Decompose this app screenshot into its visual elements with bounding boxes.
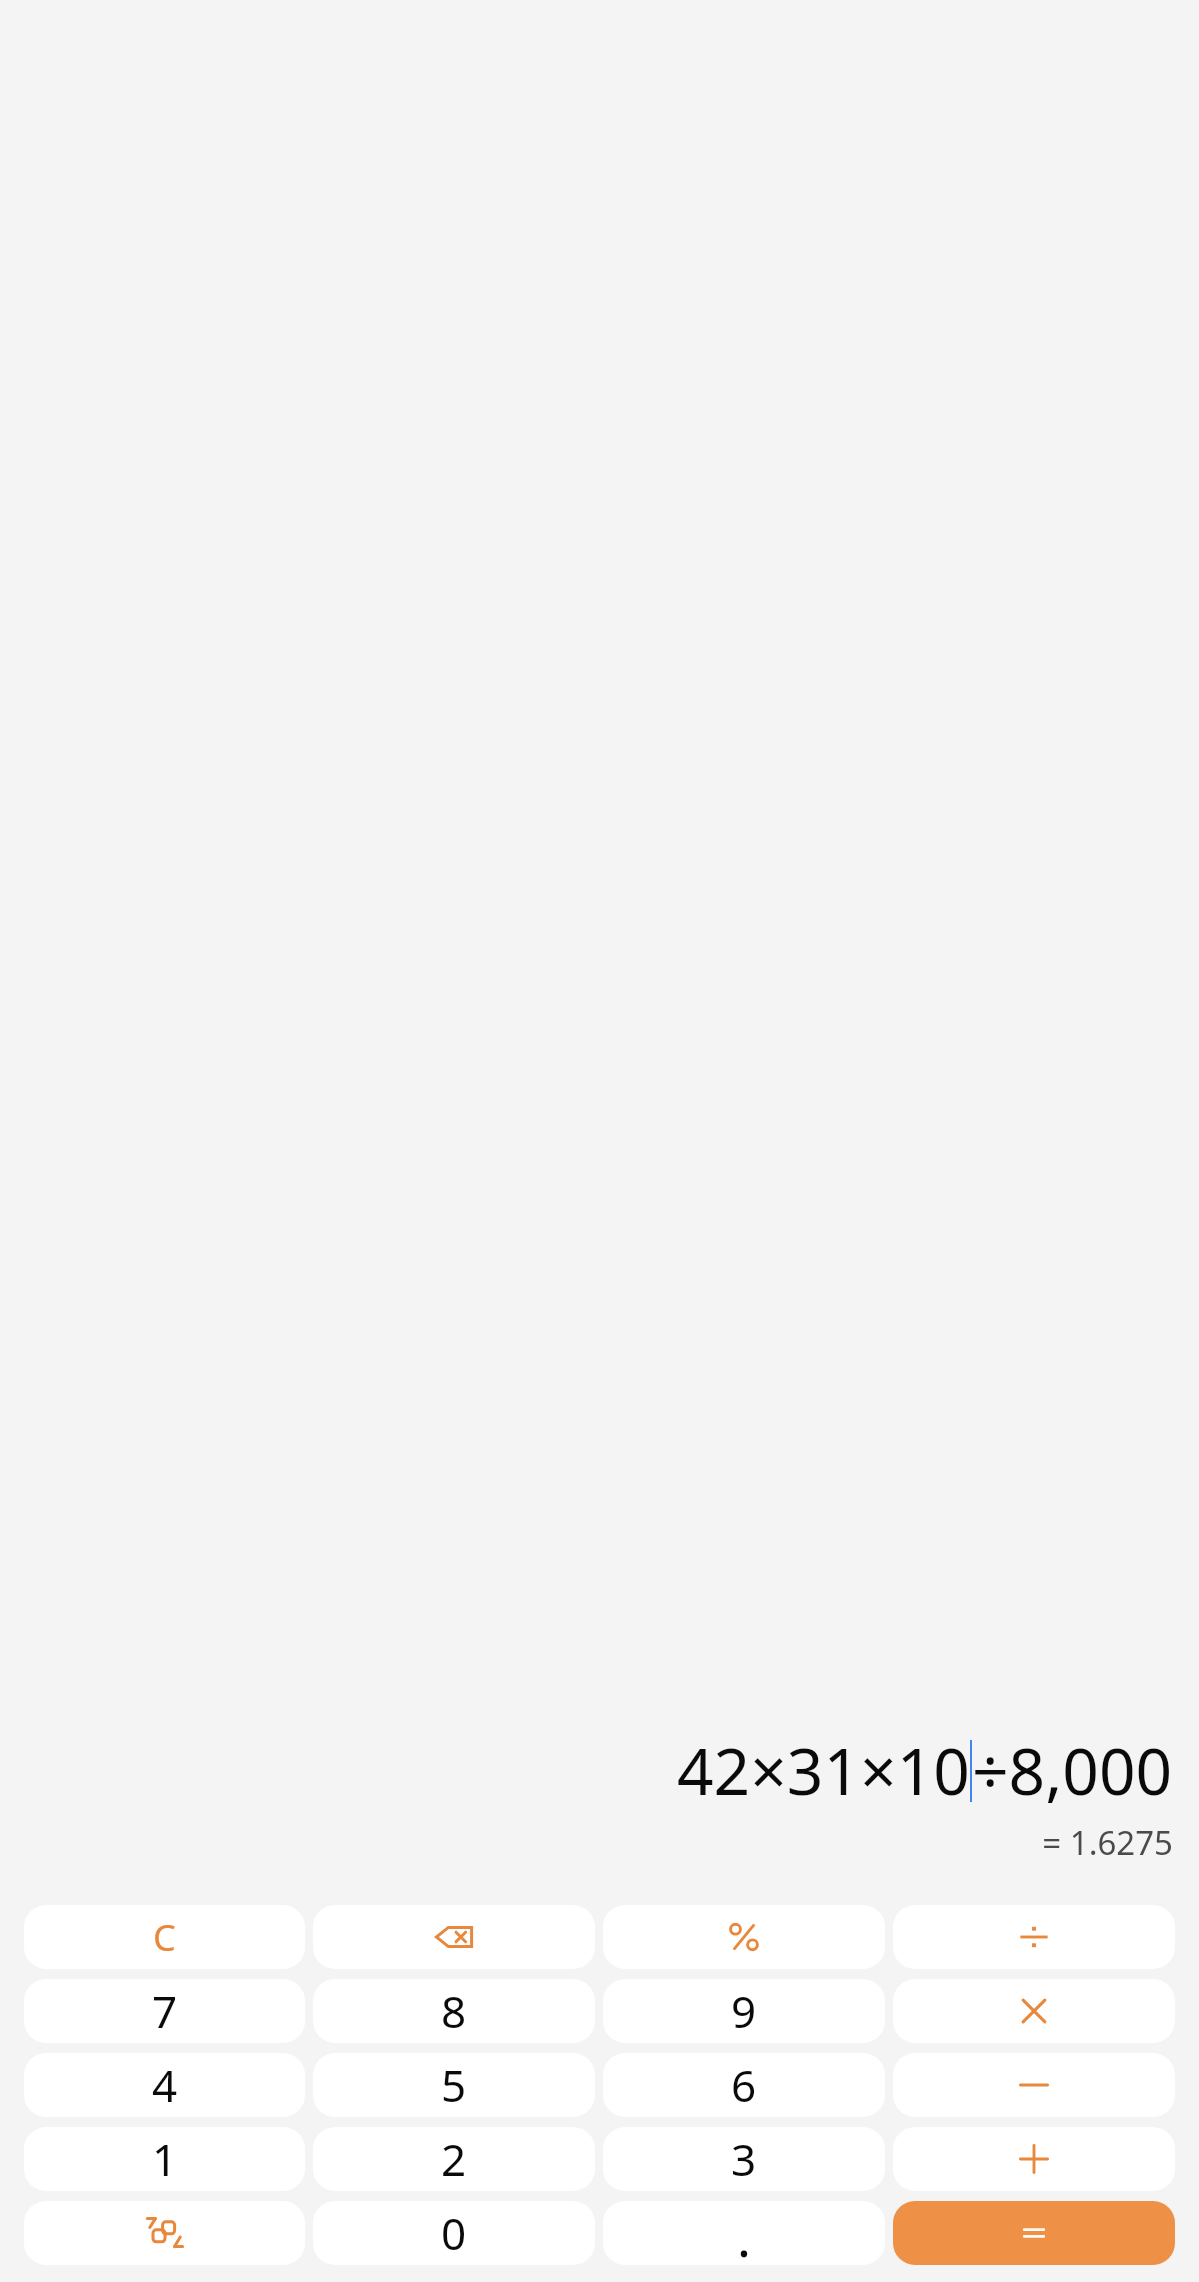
staticText: 5 <box>441 2055 467 2115</box>
staticText: 1 <box>152 2129 178 2189</box>
button[interactable]: 2 <box>313 2127 595 2191</box>
staticText: 3 <box>731 2129 757 2189</box>
staticText: 9 <box>731 1981 757 2041</box>
staticText: ÷8,000 <box>972 1727 1173 1814</box>
button[interactable]: . <box>603 2201 885 2265</box>
staticText: 0 <box>441 2203 467 2263</box>
button[interactable]: 4 <box>24 2053 305 2117</box>
button[interactable]: 1 <box>24 2127 305 2191</box>
staticText: 42×31×10 <box>677 1727 970 1814</box>
button[interactable]: 6 <box>603 2053 885 2117</box>
button[interactable] <box>893 1905 1175 1969</box>
button[interactable]: 3 <box>603 2127 885 2191</box>
button[interactable]: 0 <box>313 2201 595 2265</box>
button[interactable]: C <box>24 1905 305 1969</box>
staticText: = 1.6275 <box>1042 1820 1173 1865</box>
button[interactable]: Equals <box>893 2201 1175 2265</box>
button[interactable] <box>603 1905 885 1969</box>
staticText: C <box>153 1913 176 1962</box>
staticText: 2 <box>441 2129 467 2189</box>
staticText: 4 <box>152 2055 178 2115</box>
staticText: . <box>737 2201 751 2265</box>
button[interactable] <box>893 2127 1175 2191</box>
button[interactable]: 9 <box>603 1979 885 2043</box>
button[interactable]: 8 <box>313 1979 595 2043</box>
button[interactable] <box>313 1905 595 1969</box>
button[interactable]: Unit converter <box>24 2201 305 2265</box>
button[interactable] <box>893 2053 1175 2117</box>
button[interactable]: 5 <box>313 2053 595 2117</box>
staticText: 8 <box>441 1981 467 2041</box>
staticText: 7 <box>152 1981 178 2041</box>
button[interactable]: 7 <box>24 1979 305 2043</box>
staticText: 6 <box>731 2055 757 2115</box>
button[interactable] <box>893 1979 1175 2043</box>
